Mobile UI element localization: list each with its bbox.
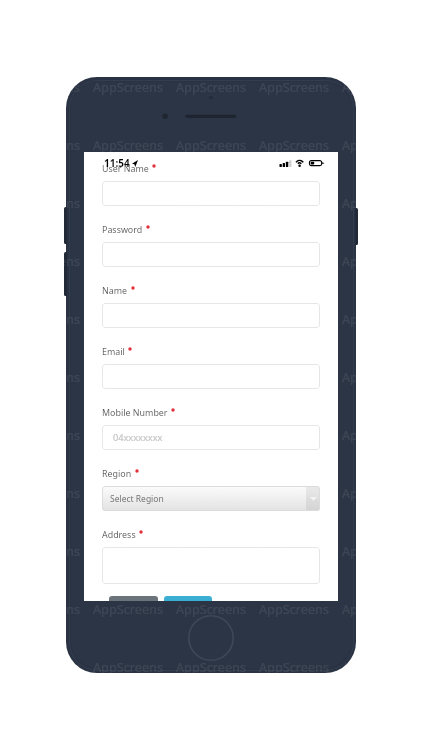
staticText: AppScreens <box>93 600 163 617</box>
staticText: AppScreens <box>10 484 80 501</box>
staticText: AppScreens <box>259 310 329 327</box>
staticText: AppScreens <box>176 484 246 501</box>
staticText: User Name <box>102 162 149 174</box>
staticText: AppScreens <box>259 136 329 153</box>
staticText: AppScreens <box>259 426 329 443</box>
staticText: AppScreens <box>342 600 412 617</box>
staticText: AppScreens <box>176 78 246 95</box>
staticText: Select Region <box>110 493 164 505</box>
staticText: AppScreens <box>176 542 246 559</box>
staticText: AppScreens <box>259 600 329 617</box>
staticText: AppScreens <box>342 136 412 153</box>
staticText: AppScreens <box>10 136 80 153</box>
staticText: AppScreens <box>259 658 329 675</box>
staticText: AppScreens <box>93 368 163 385</box>
staticText: AppScreens <box>93 136 163 153</box>
staticText: 11:54 <box>104 156 130 170</box>
button[interactable]: Address <box>102 547 320 584</box>
staticText: AppScreens <box>259 542 329 559</box>
staticText: AppScreens <box>259 194 329 211</box>
staticText: AppScreens <box>176 136 246 153</box>
staticText: AppScreens <box>342 426 412 443</box>
button[interactable]: Email <box>102 364 320 389</box>
staticText: AppScreens <box>259 78 329 95</box>
staticText: AppScreens <box>176 658 246 675</box>
staticText: AppScreens <box>259 368 329 385</box>
staticText: Email <box>102 345 125 357</box>
staticText: AppScreens <box>342 78 412 95</box>
staticText: AppScreens <box>342 658 412 675</box>
staticText: AppScreens <box>93 78 163 95</box>
button[interactable]: User Name <box>102 181 320 206</box>
staticText: AppScreens <box>259 484 329 501</box>
staticText: AppScreens <box>342 252 412 269</box>
staticText: AppScreens <box>93 310 163 327</box>
staticText: Name <box>102 284 128 296</box>
staticText: AppScreens <box>10 368 80 385</box>
staticText: AppScreens <box>10 542 80 559</box>
staticText: AppScreens <box>93 252 163 269</box>
staticText: AppScreens <box>342 542 412 559</box>
staticText: Region <box>102 467 132 479</box>
button[interactable]: Cancel <box>109 596 158 601</box>
button[interactable]: Submit <box>164 596 212 601</box>
staticText: AppScreens <box>176 194 246 211</box>
staticText: AppScreens <box>176 600 246 617</box>
staticText: AppScreens <box>10 426 80 443</box>
staticText: AppScreens <box>93 426 163 443</box>
staticText: AppScreens <box>10 194 80 211</box>
staticText: AppScreens <box>93 542 163 559</box>
staticText: AppScreens <box>342 484 412 501</box>
staticText: AppScreens <box>10 310 80 327</box>
staticText: 04xxxxxxxx <box>113 431 163 444</box>
staticText: AppScreens <box>93 658 163 675</box>
staticText: AppScreens <box>342 194 412 211</box>
staticText: AppScreens <box>10 600 80 617</box>
button[interactable]: Region <box>102 486 320 511</box>
staticText: AppScreens <box>176 252 246 269</box>
staticText: Mobile Number <box>102 406 168 418</box>
staticText: Address <box>102 528 136 540</box>
staticText: AppScreens <box>10 658 80 675</box>
staticText: AppScreens <box>10 78 80 95</box>
staticText: AppScreens <box>342 310 412 327</box>
staticText: AppScreens <box>10 252 80 269</box>
button[interactable]: Mobile Number <box>102 425 320 450</box>
button[interactable]: Password <box>102 242 320 267</box>
staticText: AppScreens <box>93 484 163 501</box>
staticText: AppScreens <box>93 194 163 211</box>
button[interactable]: Name <box>102 303 320 328</box>
staticText: AppScreens <box>259 252 329 269</box>
staticText: Password <box>102 223 143 235</box>
staticText: AppScreens <box>342 368 412 385</box>
